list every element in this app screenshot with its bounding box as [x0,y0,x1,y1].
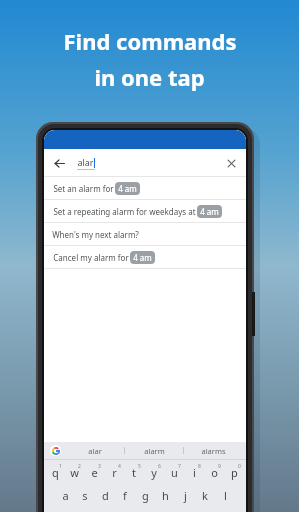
staticText: o [211,465,218,480]
button[interactable]: g [135,486,155,504]
staticText: d [102,488,109,503]
button[interactable]: f [115,486,135,504]
button[interactable]: y [144,463,164,481]
staticText: w [70,465,79,480]
button[interactable]: r [104,463,124,481]
staticText: r [112,465,117,480]
staticText: k [202,488,208,503]
staticText: f [123,488,127,503]
button[interactable]: Set an alarm for [44,177,246,200]
staticText: g [142,488,149,503]
staticText: When's my next alarm? [52,229,139,240]
button[interactable]: Clear [223,155,239,171]
button[interactable]: u [164,463,184,481]
staticText: 7 [178,463,181,470]
staticText: 2 [78,463,81,470]
staticText: l [224,488,227,503]
staticText: a [62,488,69,503]
button[interactable]: alarm [125,446,183,456]
button[interactable]: l [215,486,235,504]
staticText: alarm [144,446,165,456]
button[interactable]: h [155,486,175,504]
staticText: in one tap [94,62,205,92]
staticText: h [162,488,169,503]
staticText: 9 [218,463,221,470]
button[interactable]: d [95,486,115,504]
button[interactable]: Back [51,155,67,171]
button[interactable]: o [204,463,224,481]
button[interactable]: Google [50,445,61,456]
button[interactable]: a [55,486,75,504]
staticText: i [193,465,196,480]
staticText: alarms [201,446,226,456]
staticText: u [171,465,178,480]
button[interactable]: k [195,486,215,504]
staticText: alar [88,446,102,456]
staticText: 4 am [200,206,219,217]
button[interactable]: q [46,463,65,481]
button[interactable]: p [224,463,244,481]
button[interactable]: t [124,463,144,481]
button[interactable]: alar [65,446,124,456]
staticText: alar [77,156,94,168]
staticText: 6 [158,463,161,470]
button[interactable]: j [175,486,195,504]
button[interactable]: e [84,463,104,481]
button[interactable]: alarms [184,446,242,456]
staticText: e [91,465,98,480]
staticText: Set a repeating alarm for weekdays at [52,206,197,217]
staticText: y [151,465,157,480]
staticText: p [231,465,238,480]
staticText: t [132,465,136,480]
button[interactable]: When's my next alarm? [44,223,246,246]
staticText: Find commands [63,26,237,56]
button[interactable]: Set a repeating alarm for weekdays at [44,200,246,223]
staticText: Set an alarm for [52,183,115,194]
staticText: s [82,488,88,503]
button[interactable]: s [75,486,95,504]
staticText: q [52,465,59,480]
staticText: 5 [138,463,141,470]
button[interactable]: Back [44,149,246,176]
staticText: 3 [98,463,101,470]
staticText: 4 [118,463,121,470]
button[interactable]: Cancel my alarm for [44,246,246,269]
staticText: 4 am [133,252,152,263]
button[interactable]: w [65,463,84,481]
staticText: j [184,488,187,503]
staticText: 8 [198,463,201,470]
staticText: 1 [59,463,62,470]
staticText: 0 [238,463,241,470]
button[interactable]: i [184,463,204,481]
staticText: 4 am [118,183,137,194]
staticText: Cancel my alarm for [52,252,130,263]
